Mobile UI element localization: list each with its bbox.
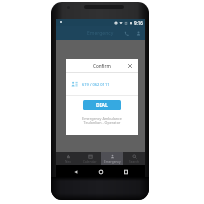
staticText: 619 / 062 0111: [82, 82, 110, 87]
button[interactable]: DIAL: [83, 100, 121, 110]
staticText: Calendar: [83, 160, 97, 164]
button[interactable]: Close: [126, 62, 134, 70]
staticText: 9:16: [134, 20, 143, 26]
button[interactable]: Emergency: [101, 152, 123, 165]
staticText: Emergency: [87, 30, 114, 37]
button[interactable]: Recent apps: [120, 166, 131, 177]
button[interactable]: Back: [70, 166, 81, 177]
button[interactable]: Home: [95, 166, 106, 177]
button[interactable]: Search: [123, 152, 145, 165]
staticText: Emergency Ambulance Teulonlian - Operato…: [71, 116, 133, 125]
staticText: Emergency: [104, 160, 121, 164]
staticText: Search: [129, 160, 140, 164]
staticText: DIAL: [96, 102, 108, 109]
staticText: Confirm: [93, 63, 111, 69]
button[interactable]: 619 / 062 0111: [71, 73, 134, 95]
button[interactable]: Calendar: [79, 152, 101, 165]
button[interactable]: Nex: [56, 152, 79, 165]
staticText: Nex: [65, 160, 71, 164]
button[interactable]: Account: [133, 28, 143, 38]
button[interactable]: Call: [121, 28, 131, 38]
